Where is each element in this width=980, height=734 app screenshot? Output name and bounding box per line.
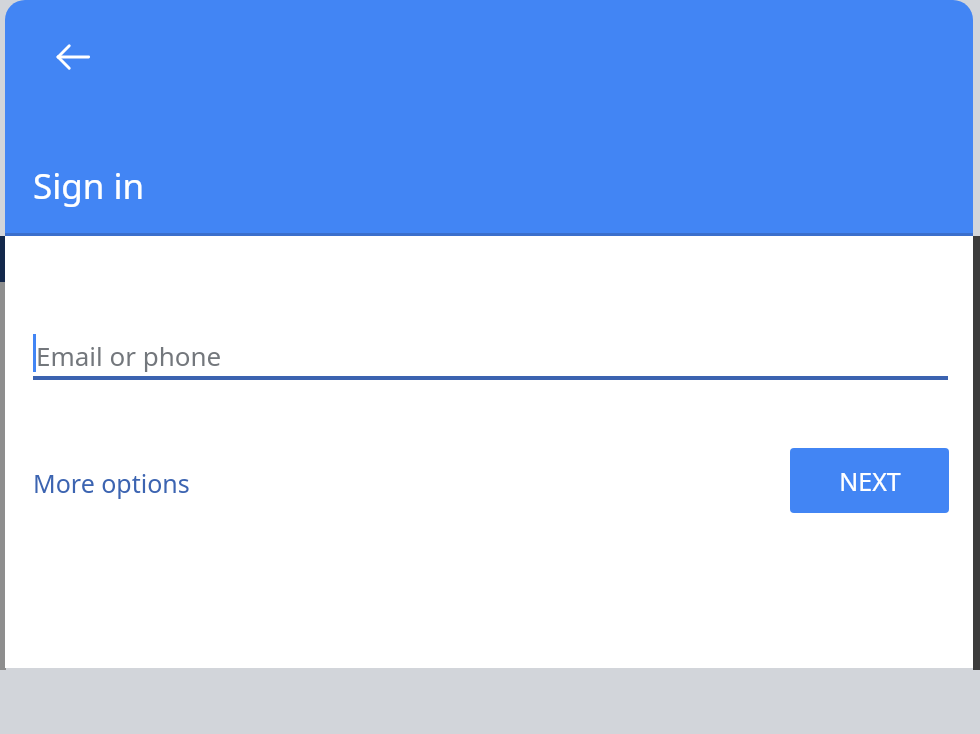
staticText: NEXT [839, 464, 901, 498]
button[interactable]: NEXT [790, 448, 949, 513]
button[interactable]: More options [25, 458, 198, 508]
button[interactable]: Email or phone [33, 318, 948, 380]
button[interactable]: Back [49, 33, 97, 81]
staticText: Sign in [33, 162, 145, 210]
staticText: Email or phone [36, 338, 222, 373]
staticText: More options [33, 466, 190, 500]
